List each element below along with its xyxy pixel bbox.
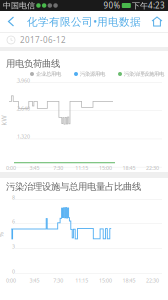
staticText: 0:00 [6, 164, 16, 172]
staticText: % [0, 230, 4, 239]
staticText: 企业总用电 [34, 71, 61, 77]
staticText: 污染治理设施与总用电量占比曲线 [6, 181, 141, 192]
staticText: 化学有限公司•用电数据 [27, 14, 141, 29]
staticText: 90% [104, 0, 121, 11]
staticText: 污染治理设施用电 [122, 71, 164, 77]
staticText: 11:15 [75, 164, 88, 172]
staticText: 18:45 [122, 164, 135, 172]
staticText: 3,960 [17, 77, 30, 84]
staticText: 3 [12, 243, 15, 250]
staticText: 0 [12, 268, 15, 275]
staticText: 用电负荷曲线 [6, 58, 60, 69]
staticText: 3:45 [30, 164, 40, 172]
staticText: 0:00 [6, 277, 16, 284]
staticText: 2017-06-12 [20, 35, 66, 45]
staticText: 6 [12, 218, 15, 225]
button[interactable]: Home [148, 11, 166, 32]
staticText: 中国电信 [3, 1, 35, 10]
staticText: 1,320 [17, 133, 30, 140]
staticText: 22:30 [146, 277, 159, 284]
button[interactable]: Back [2, 11, 20, 32]
staticText: kW [0, 116, 9, 125]
staticText: 3:45 [30, 277, 40, 284]
staticText: 22:30 [146, 164, 159, 172]
staticText: 18:45 [122, 277, 135, 284]
staticText: 15:00 [99, 277, 112, 284]
staticText: 2,640 [17, 105, 30, 112]
staticText: 15:00 [99, 164, 112, 172]
staticText: 7:30 [53, 277, 63, 284]
staticText: 污染源用电 [78, 71, 105, 77]
button[interactable]: 2017-06-12 [0, 33, 168, 47]
staticText: 11:15 [75, 277, 88, 284]
staticText: 7:30 [53, 164, 63, 172]
staticText: 下午4:23 [132, 0, 165, 11]
staticText: 8 [12, 194, 15, 201]
